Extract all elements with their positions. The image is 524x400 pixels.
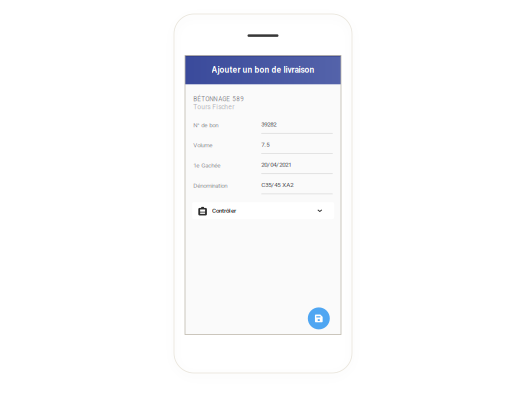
staticText: Volume (193, 142, 212, 149)
staticText: 20/04/2021 (261, 161, 291, 168)
staticText: Ajouter un bon de livraison (211, 65, 314, 75)
button[interactable]: Ajouter un bon de livraison (185, 55, 341, 84)
button[interactable]: Enregistrer (308, 307, 330, 329)
staticText: C35/45 XA2 (261, 181, 293, 189)
staticText: 39282 (261, 121, 276, 128)
staticText: Tours Fischer (193, 103, 234, 111)
staticText: Contrôler (212, 207, 236, 214)
button[interactable]: Contrôler (192, 202, 334, 219)
staticText: 7.5 (261, 141, 269, 148)
staticText: Dénomination (193, 182, 227, 189)
staticText: N° de bon (193, 121, 218, 129)
staticText: BÉTONNAGE 589 (193, 95, 244, 103)
staticText: 1e Gachée (193, 162, 220, 169)
